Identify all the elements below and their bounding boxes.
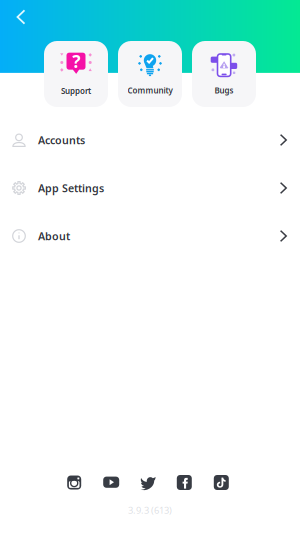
button[interactable]: Bugs xyxy=(192,41,256,107)
button[interactable]: Instagram xyxy=(67,475,81,489)
button[interactable]: App Settings xyxy=(0,164,300,212)
button[interactable]: Facebook xyxy=(177,475,192,490)
staticText: Community xyxy=(127,85,172,96)
staticText: ? xyxy=(72,50,80,73)
button[interactable]: ? xyxy=(44,41,108,107)
button[interactable]: Community xyxy=(118,41,182,107)
button[interactable]: Accounts xyxy=(0,116,300,164)
button[interactable]: Twitter xyxy=(140,475,156,490)
staticText: App Settings xyxy=(38,181,104,195)
staticText: Bugs xyxy=(214,85,233,96)
staticText: Support xyxy=(61,86,91,96)
staticText: About xyxy=(38,229,70,243)
staticText: Accounts xyxy=(38,133,85,147)
button[interactable]: About xyxy=(0,212,300,260)
button[interactable]: TikTok xyxy=(214,475,229,490)
button[interactable]: YouTube xyxy=(103,475,119,490)
button[interactable]: Back xyxy=(0,0,42,34)
staticText: 3.9.3 (613) xyxy=(128,504,172,516)
